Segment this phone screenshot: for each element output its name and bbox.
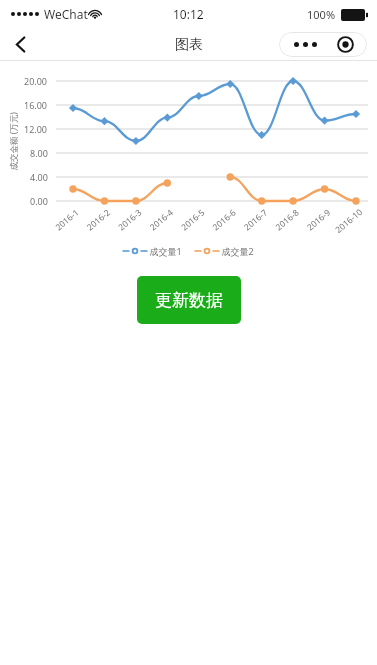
staticText: 更新数据 — [155, 290, 223, 311]
button[interactable]: Back — [0, 28, 40, 61]
button[interactable]: 更新数据 — [137, 276, 241, 324]
staticText: 100% — [307, 7, 336, 22]
staticText: WeChat — [44, 6, 88, 22]
button[interactable]: More and Close menu — [279, 32, 367, 57]
staticText: 图表 — [175, 36, 203, 54]
staticText: 10:12 — [173, 6, 204, 22]
